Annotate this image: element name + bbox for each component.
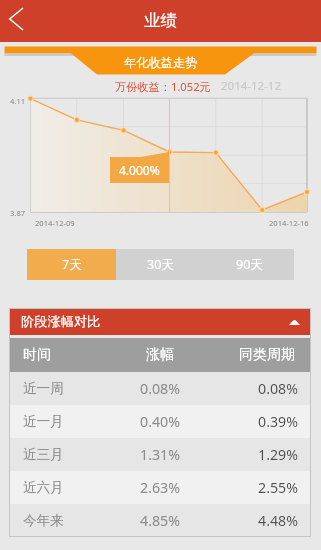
staticText: 2014-12-09 bbox=[35, 218, 75, 228]
staticText: 4.48% bbox=[206, 511, 298, 530]
button[interactable]: 30天 bbox=[116, 249, 205, 280]
staticText: 0.08% bbox=[114, 379, 206, 398]
staticText: 30天 bbox=[147, 256, 174, 273]
button[interactable]: 7天 bbox=[27, 249, 116, 280]
staticText: 0.39% bbox=[206, 412, 298, 431]
staticText: 4.85% bbox=[114, 511, 206, 530]
staticText: 4.000% bbox=[119, 162, 160, 178]
staticText: 阶段涨幅对比 bbox=[21, 313, 101, 330]
staticText: 今年来 bbox=[23, 512, 114, 529]
staticText: 1.31% bbox=[114, 445, 206, 464]
staticText: 3.87 bbox=[10, 208, 26, 218]
staticText: 业绩 bbox=[144, 10, 177, 31]
staticText: 2014-12-16 bbox=[269, 218, 309, 228]
staticText: 涨幅 bbox=[114, 346, 206, 364]
button[interactable]: 近一周 bbox=[9, 372, 311, 405]
staticText: 4.11 bbox=[10, 96, 26, 106]
button[interactable]: Back bbox=[0, 0, 34, 42]
button[interactable]: 今年来 bbox=[9, 504, 311, 537]
staticText: 近一月 bbox=[23, 413, 114, 430]
staticText: 近三月 bbox=[23, 446, 114, 463]
staticText: 90天 bbox=[236, 256, 263, 273]
staticText: 近一周 bbox=[23, 380, 114, 397]
staticText: 2014-12-12 bbox=[221, 78, 282, 94]
staticText: 0.40% bbox=[114, 412, 206, 431]
button[interactable]: 阶段涨幅对比 bbox=[9, 308, 311, 335]
staticText: 2.63% bbox=[114, 478, 206, 497]
staticText: 时间 bbox=[23, 346, 114, 364]
button[interactable]: 近三月 bbox=[9, 438, 311, 471]
button[interactable]: 近六月 bbox=[9, 471, 311, 504]
button[interactable]: 90天 bbox=[205, 249, 294, 280]
staticText: 1.29% bbox=[206, 445, 298, 464]
staticText: 同类周期 bbox=[206, 346, 295, 364]
staticText: 0.08% bbox=[206, 379, 298, 398]
button[interactable]: 近一月 bbox=[9, 405, 311, 438]
staticText: 2.55% bbox=[206, 478, 298, 497]
staticText: 年化收益走势 bbox=[124, 55, 198, 70]
staticText: 万份收益：1.052元 bbox=[115, 79, 211, 94]
staticText: 近六月 bbox=[23, 479, 114, 496]
staticText: 7天 bbox=[62, 256, 82, 273]
